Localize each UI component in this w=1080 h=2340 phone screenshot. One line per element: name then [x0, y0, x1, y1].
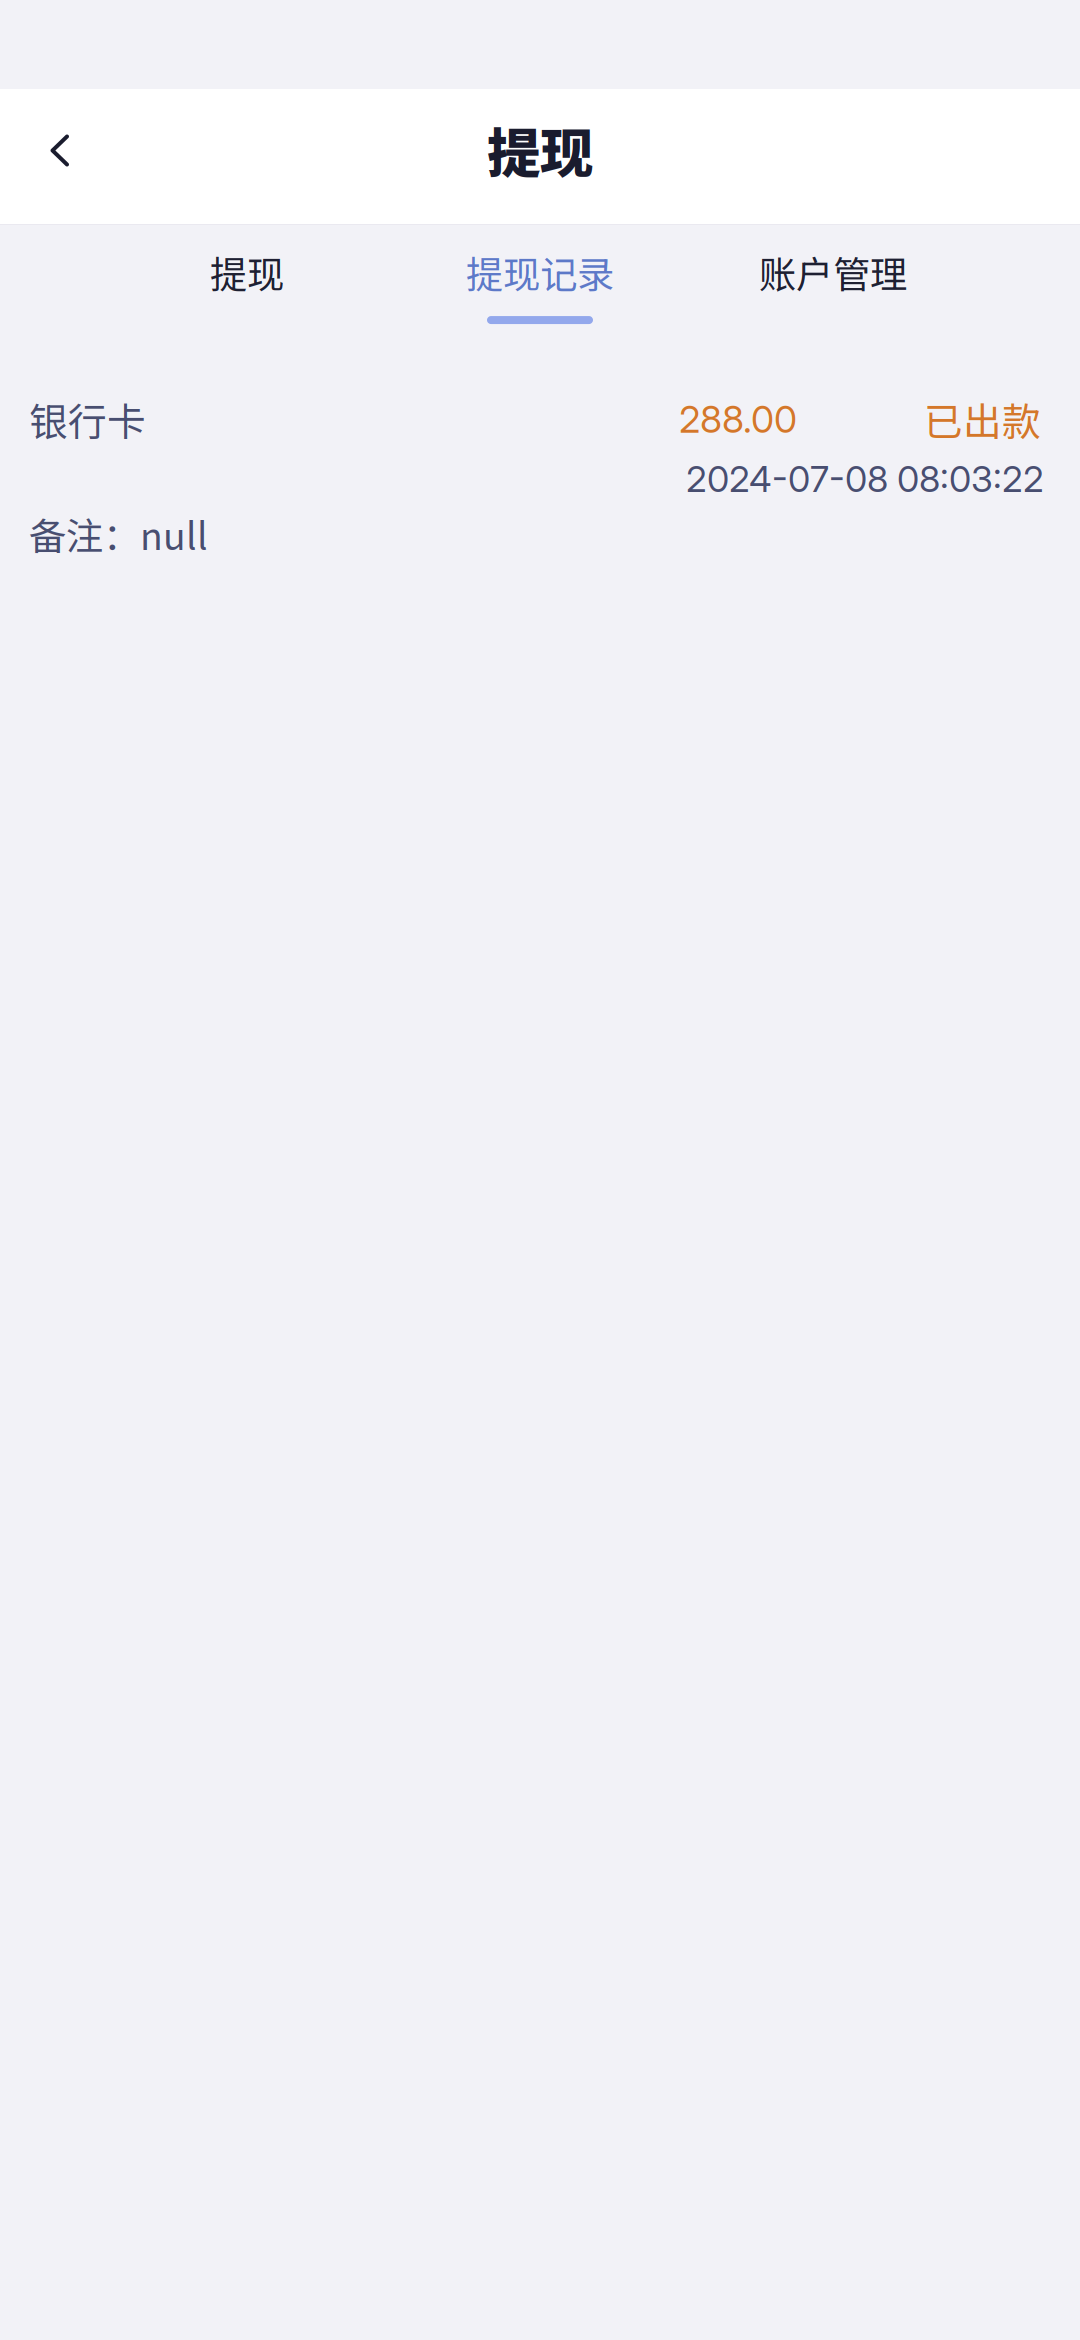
staticText: 账户管理: [759, 245, 907, 299]
button[interactable]: 提现记录: [393, 225, 686, 351]
staticText: 288.00: [679, 396, 797, 442]
staticText: 银行卡: [29, 391, 146, 447]
staticText: 提现: [210, 245, 284, 299]
button[interactable]: 账户管理: [686, 225, 979, 351]
staticText: 提现: [487, 111, 593, 188]
staticText: 提现记录: [466, 245, 614, 299]
staticText: 2024-07-08 08:03:22: [686, 457, 1044, 501]
staticText: 已出款: [924, 391, 1041, 447]
button[interactable]: 提现: [100, 225, 393, 351]
button[interactable]: Back: [0, 89, 119, 224]
staticText: 备注：null: [29, 507, 208, 561]
button[interactable]: 银行卡: [0, 351, 1080, 601]
